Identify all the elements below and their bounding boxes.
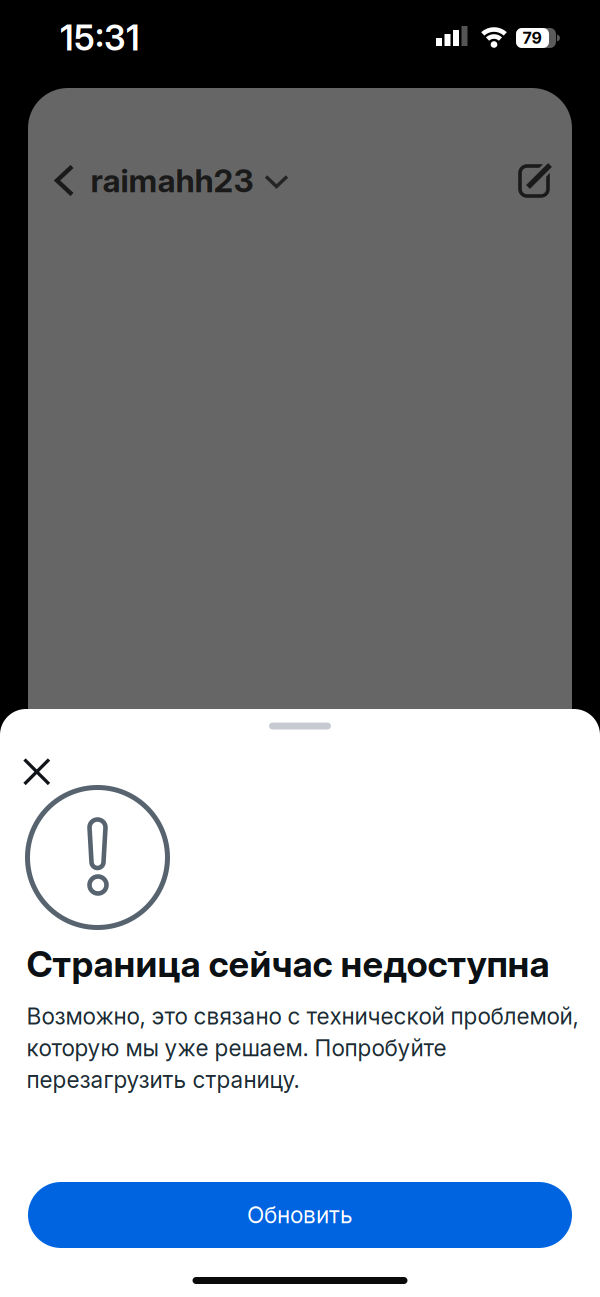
button[interactable]: Back xyxy=(45,158,85,202)
staticText: 15:31 xyxy=(60,18,140,58)
staticText: raimahh23 xyxy=(90,162,253,199)
button[interactable]: New post xyxy=(514,158,558,202)
staticText: 79 xyxy=(522,29,541,47)
staticText: Возможно, это связано с технической проб… xyxy=(26,1003,578,1093)
button[interactable]: raimahh23 xyxy=(90,158,300,202)
button[interactable]: Обновить xyxy=(28,1182,572,1248)
staticText: Обновить xyxy=(247,1202,353,1228)
button[interactable]: Close xyxy=(16,751,56,791)
staticText: Страница сейчас недоступна xyxy=(26,943,549,985)
